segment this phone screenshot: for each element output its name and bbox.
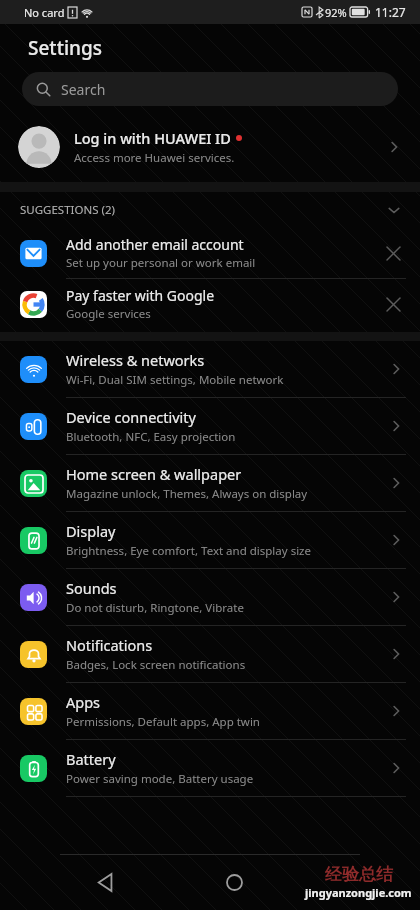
other: Collapse suggestions xyxy=(386,202,402,218)
staticText: Badges, Lock screen notifications xyxy=(66,657,246,673)
staticText: Home screen & wallpaper xyxy=(66,464,242,484)
button[interactable]: Dismiss xyxy=(382,242,404,264)
button[interactable]: Log in with HUAWEI ID xyxy=(0,118,420,176)
staticText: Apps xyxy=(66,692,101,712)
staticText: Pay faster with Google xyxy=(66,286,215,305)
button[interactable]: Display xyxy=(0,512,420,568)
button[interactable]: Battery xyxy=(0,740,420,796)
staticText: Notifications xyxy=(66,635,153,655)
button[interactable]: SUGGESTIONS (2) xyxy=(0,192,420,228)
staticText: 11:27 xyxy=(375,4,406,20)
staticText: Set up your personal or work email xyxy=(66,255,256,271)
staticText: Wi-Fi, Dual SIM settings, Mobile network xyxy=(66,372,284,388)
button[interactable]: Sounds xyxy=(0,569,420,625)
button[interactable]: Dismiss xyxy=(382,293,404,315)
staticText: Device connectivity xyxy=(66,407,196,427)
button[interactable]: Wireless & networks xyxy=(0,341,420,397)
staticText: Settings xyxy=(28,35,102,61)
button[interactable]: Apps xyxy=(0,683,420,739)
staticText: No card xyxy=(24,5,65,20)
staticText: Sounds xyxy=(66,578,117,598)
button[interactable]: Search xyxy=(22,72,398,106)
staticText: jingyanzongjie.com xyxy=(305,885,412,900)
staticText: Log in with HUAWEI ID xyxy=(74,128,231,148)
staticText: 经验总结 xyxy=(325,864,393,885)
staticText: SUGGESTIONS (2) xyxy=(20,202,115,218)
staticText: Bluetooth, NFC, Easy projection xyxy=(66,429,236,445)
staticText: Power saving mode, Battery usage xyxy=(66,771,254,787)
staticText: Search xyxy=(61,80,106,99)
staticText: Google services xyxy=(66,306,151,322)
staticText: Access more Huawei services. xyxy=(74,150,235,166)
button[interactable]: Home xyxy=(210,858,258,906)
staticText: Display xyxy=(66,521,116,541)
staticText: Add another email account xyxy=(66,235,244,254)
staticText: Permissions, Default apps, App twin xyxy=(66,714,260,730)
staticText: Battery xyxy=(66,749,116,769)
button[interactable]: Home screen & wallpaper xyxy=(0,455,420,511)
button[interactable]: Add another email account xyxy=(0,228,420,278)
staticText: Wireless & networks xyxy=(66,350,205,370)
button[interactable]: Pay faster with Google xyxy=(0,279,420,329)
button[interactable]: Back xyxy=(81,858,129,906)
staticText: 92% xyxy=(325,5,347,20)
button[interactable]: Notifications xyxy=(0,626,420,682)
staticText: Do not disturb, Ringtone, Vibrate xyxy=(66,600,244,616)
button[interactable]: Device connectivity xyxy=(0,398,420,454)
staticText: Brightness, Eye comfort, Text and displa… xyxy=(66,543,312,559)
staticText: Magazine unlock, Themes, Always on displ… xyxy=(66,486,308,502)
